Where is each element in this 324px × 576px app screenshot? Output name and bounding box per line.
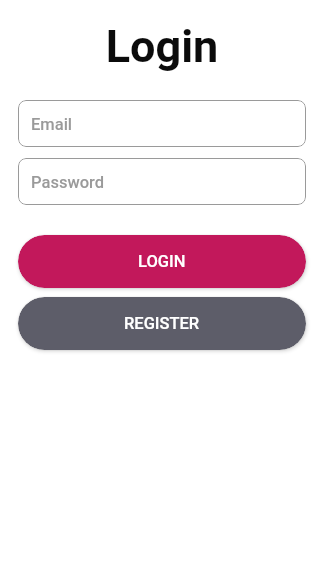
staticText: Login — [18, 20, 306, 73]
staticText: Email — [31, 115, 73, 134]
button[interactable]: Email — [18, 100, 306, 147]
button[interactable]: Password — [18, 158, 306, 205]
staticText: REGISTER — [124, 314, 200, 333]
staticText: LOGIN — [138, 252, 186, 271]
button[interactable]: LOGIN — [18, 235, 306, 288]
button[interactable]: REGISTER — [18, 297, 306, 350]
staticText: Password — [31, 173, 105, 192]
